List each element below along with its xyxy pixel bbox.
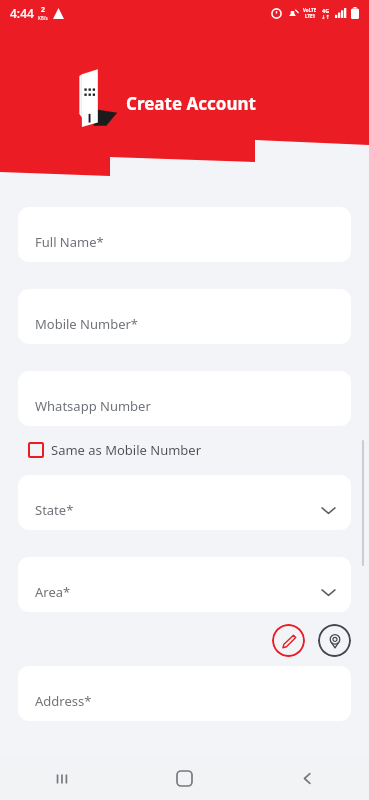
button[interactable]: Recents [0, 757, 123, 800]
staticText: Full Name* [35, 233, 104, 251]
staticText: Address* [35, 692, 92, 710]
staticText: Area* [35, 583, 71, 601]
staticText: KB/s [38, 15, 48, 21]
button[interactable]: State* [18, 475, 351, 530]
button[interactable]: Area* [18, 557, 351, 612]
staticText: 2 [41, 5, 46, 15]
staticText: State* [35, 501, 74, 519]
button[interactable]: Full Name* [18, 207, 351, 262]
staticText: 4:44 [10, 5, 34, 21]
button[interactable]: Pick location [318, 624, 351, 657]
staticText: Create Account [126, 92, 256, 115]
button[interactable]: Back [246, 757, 369, 800]
button[interactable]: Home [123, 757, 246, 800]
staticText: Mobile Number* [35, 315, 138, 333]
button[interactable]: Whatsapp Number [18, 371, 351, 426]
button[interactable]: Address* [18, 666, 351, 721]
staticText: Same as Mobile Number [51, 441, 202, 459]
staticText: Whatsapp Number [35, 397, 151, 415]
staticText: LTE1 [305, 13, 316, 19]
staticText: ↓↑ [321, 14, 331, 20]
button[interactable]: Same as Mobile Number [28, 441, 202, 459]
staticText: VoLTE [303, 7, 317, 13]
button[interactable]: Edit address [272, 624, 305, 657]
button[interactable]: Mobile Number* [18, 289, 351, 344]
staticText: 4G [322, 7, 330, 14]
